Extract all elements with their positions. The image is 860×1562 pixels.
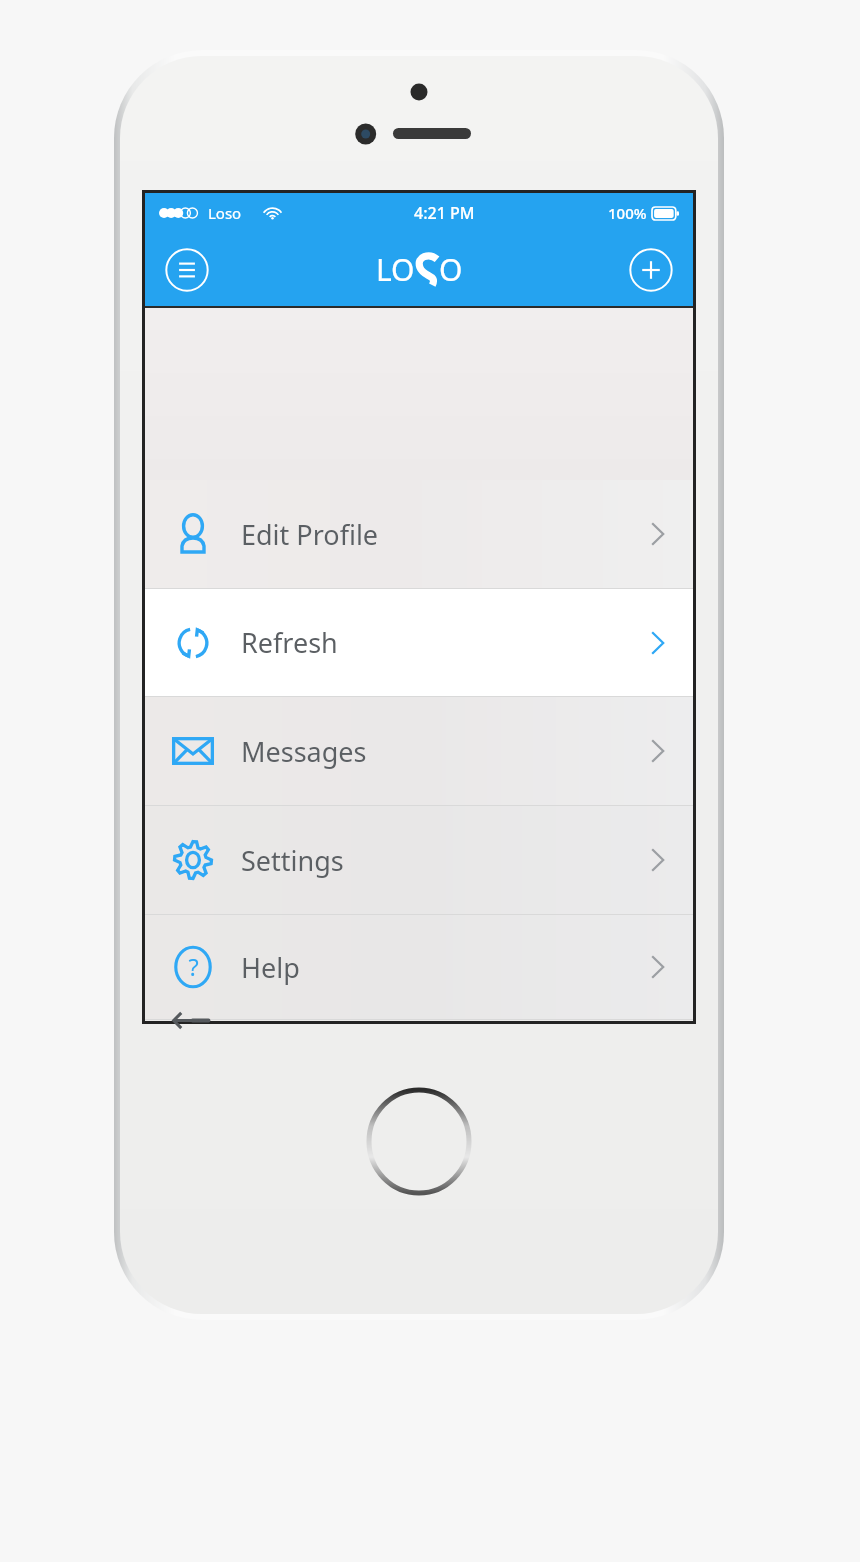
button[interactable]: Menu (163, 246, 211, 294)
staticText: Loso (208, 203, 242, 223)
button[interactable]: Messages (145, 697, 693, 805)
staticText: 100% (608, 203, 647, 223)
staticText: LO (376, 249, 415, 290)
staticText: Help (241, 949, 300, 986)
button[interactable]: Refresh (145, 589, 693, 696)
button[interactable]: Add (627, 246, 675, 294)
staticText: O (439, 249, 463, 290)
staticText: Messages (241, 733, 367, 770)
button[interactable]: Sign Out (145, 1020, 693, 1021)
button[interactable]: Edit Profile (145, 480, 693, 588)
button[interactable]: Home (369, 1090, 469, 1193)
button[interactable]: Settings (145, 806, 693, 914)
staticText: ? (188, 951, 199, 983)
button[interactable]: ? (145, 915, 693, 1019)
staticText: Refresh (241, 624, 338, 661)
staticText: Edit Profile (241, 516, 379, 553)
staticText: 4:21 PM (414, 202, 475, 224)
staticText: Settings (241, 842, 344, 879)
